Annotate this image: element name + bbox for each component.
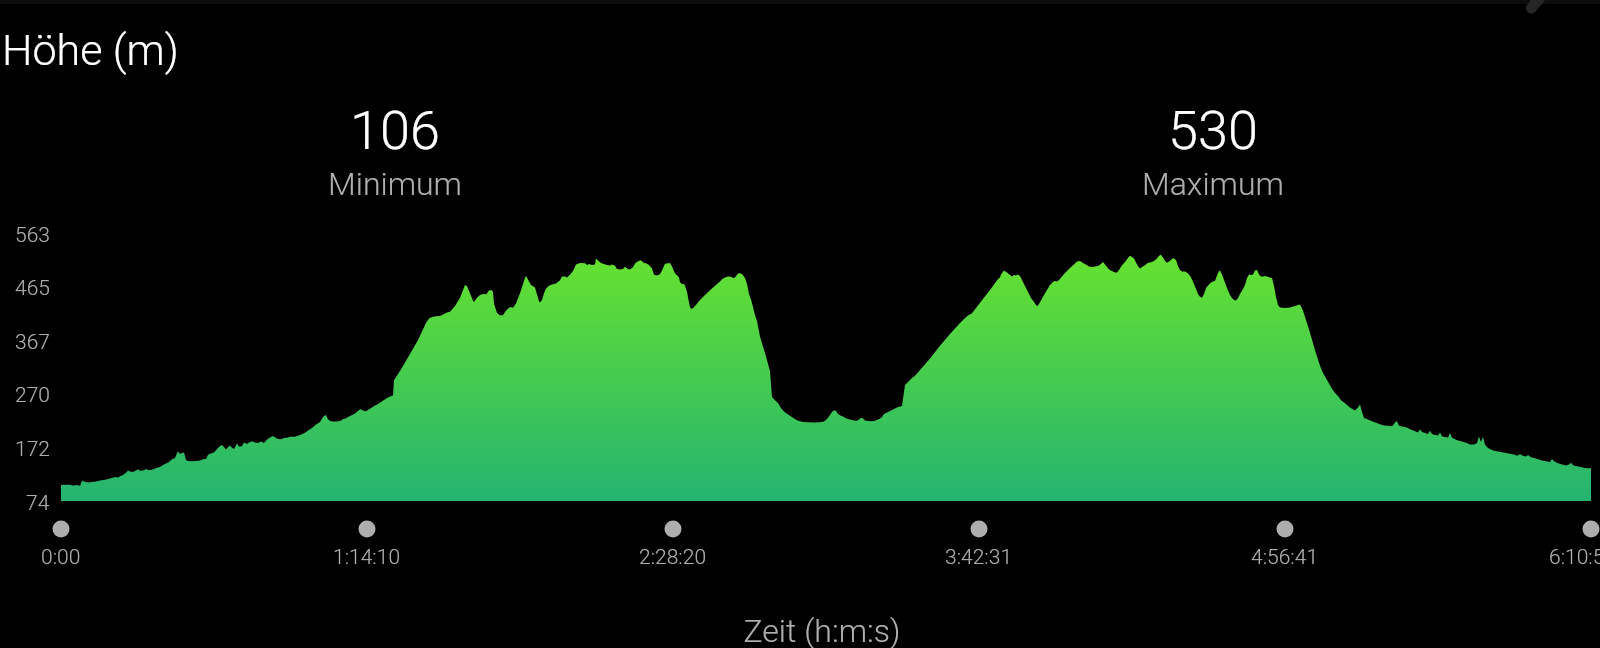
button[interactable]: Höhe (m) chart title [4, 18, 194, 78]
button[interactable]: More options [1512, 0, 1556, 22]
button[interactable]: Maximum 530 [1118, 96, 1308, 206]
button[interactable]: Elevation profile graph [4, 215, 1596, 515]
button[interactable]: Minimum 106 [300, 96, 490, 206]
